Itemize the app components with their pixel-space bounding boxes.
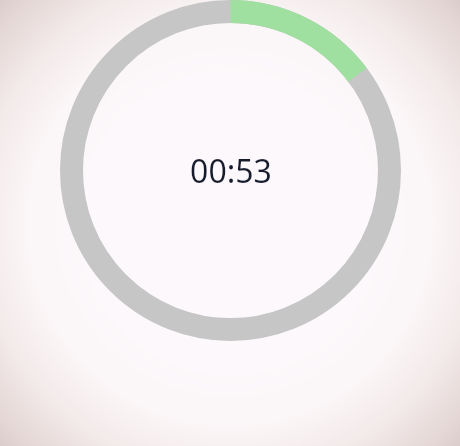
staticText: 00:53: [190, 149, 272, 193]
button[interactable]: Timer progress, 00:53 remaining: [60, 0, 401, 341]
